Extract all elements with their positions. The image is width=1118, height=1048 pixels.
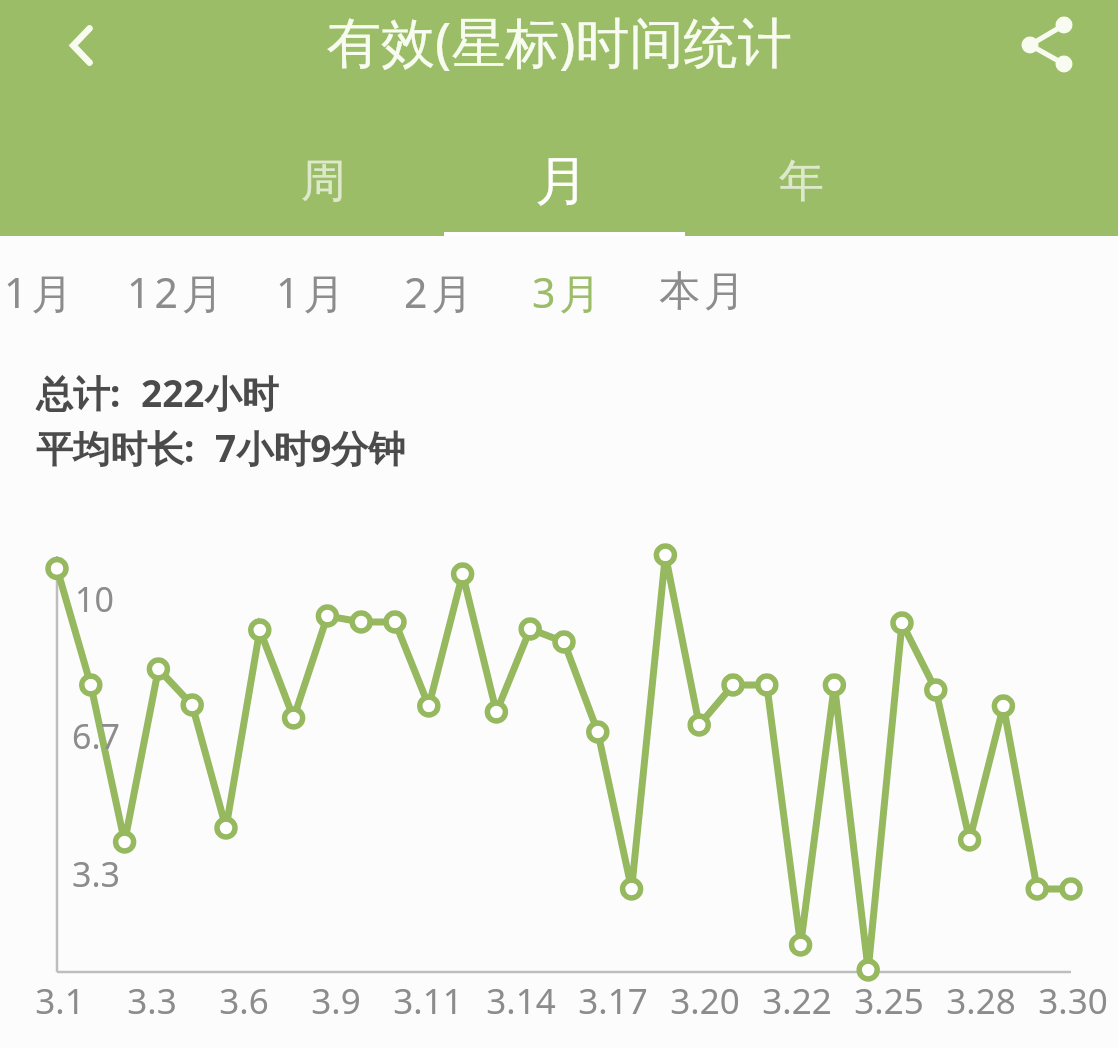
button[interactable]: 2月 [404,248,477,336]
button[interactable]: 1月 [4,248,77,336]
staticText: 3.11 [393,977,463,1025]
staticText: 月 [535,148,588,215]
button[interactable]: 3月 [532,248,605,336]
staticText: 平均时长: [36,422,195,473]
staticText: 周 [301,153,346,210]
staticText: 3.14 [486,977,556,1025]
button[interactable]: Share [1004,14,1066,76]
staticText: 本月 [657,266,747,318]
staticText: 有效(星标)时间统计 [327,4,792,78]
staticText: 1月 [276,264,349,320]
staticText: 年 [779,153,824,210]
staticText: 6.7 [72,713,121,759]
button[interactable]: 1月 [276,248,349,336]
button[interactable]: 周 [203,100,443,236]
button[interactable]: 年 [681,100,921,236]
staticText: 10 [75,576,114,622]
staticText: 3.3 [127,977,177,1025]
staticText: 3.17 [578,977,648,1025]
button[interactable]: Back [49,14,111,76]
staticText: 3.30 [1038,977,1108,1025]
staticText: 7小时9分钟 [215,422,406,473]
staticText: 3.3 [72,851,121,897]
staticText: 3.22 [762,977,832,1025]
button[interactable]: 月 [441,100,681,236]
staticText: 3.25 [854,977,924,1025]
staticText: 3.20 [670,977,740,1025]
staticText: 2月 [404,264,477,320]
staticText: 3.9 [311,977,361,1025]
button[interactable]: 本月 [657,248,747,336]
staticText: 1月 [4,264,77,320]
staticText: 3.28 [946,977,1016,1025]
button[interactable]: 12月 [127,248,227,336]
staticText: 3.1 [35,977,85,1025]
staticText: 3.6 [219,977,269,1025]
staticText: 总计: [36,367,121,418]
staticText: 3月 [532,264,605,320]
staticText: 12月 [127,264,227,320]
staticText: 222小时 [141,367,279,418]
